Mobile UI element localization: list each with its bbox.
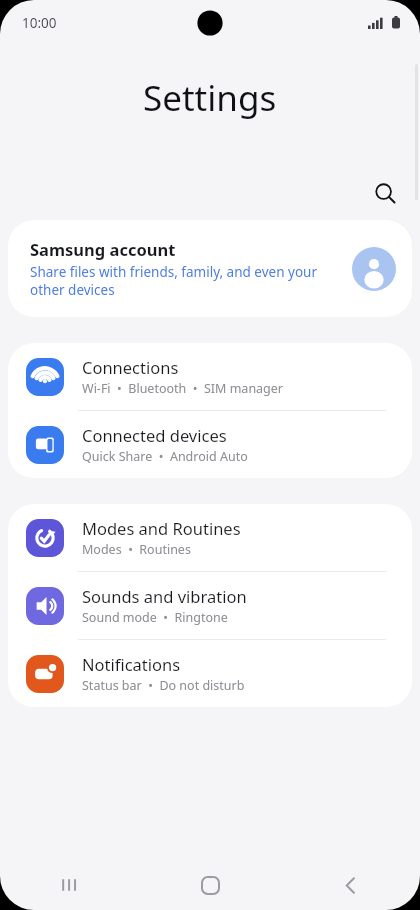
staticText: Share files with friends, family, and ev… <box>30 263 335 299</box>
staticText: Sound mode • Ringtone <box>82 609 228 626</box>
button[interactable]: Notifications <box>8 640 412 707</box>
staticText: Connections <box>82 356 179 378</box>
staticText: Samsung account <box>30 238 176 260</box>
staticText: Notifications <box>82 653 181 675</box>
staticText: Wi-Fi • Bluetooth • SIM manager <box>82 380 284 397</box>
button[interactable]: Sounds and vibration <box>8 572 412 639</box>
staticText: 10:00 <box>22 14 57 32</box>
staticText: Modes • Routines <box>82 541 191 558</box>
button[interactable]: Home <box>140 860 280 910</box>
staticText: Sounds and vibration <box>82 585 247 607</box>
button[interactable]: Recent apps <box>0 860 140 910</box>
staticText: Quick Share • Android Auto <box>82 448 248 465</box>
button[interactable]: Samsung account <box>8 220 412 317</box>
button[interactable]: Back <box>280 860 420 910</box>
button[interactable]: Connected devices <box>8 411 412 478</box>
staticText: Connected devices <box>82 424 227 446</box>
button[interactable]: Search settings <box>362 170 408 216</box>
staticText: Status bar • Do not disturb <box>82 677 245 694</box>
button[interactable]: Modes and Routines <box>8 504 412 571</box>
staticText: Settings <box>143 74 277 122</box>
button[interactable]: Connections <box>8 343 412 410</box>
staticText: Modes and Routines <box>82 517 241 539</box>
